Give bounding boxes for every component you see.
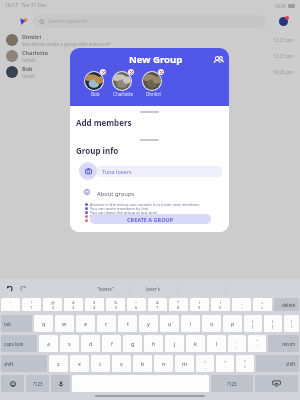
staticText: p xyxy=(231,320,235,327)
staticText: x xyxy=(78,360,81,367)
button[interactable]: + xyxy=(253,298,272,311)
button[interactable]: : xyxy=(228,335,246,352)
staticText: . xyxy=(225,364,227,369)
button[interactable]: l xyxy=(207,335,226,352)
button[interactable]: n xyxy=(154,355,173,372)
button[interactable]: Remove Bob xyxy=(100,69,106,75)
button[interactable]: shift xyxy=(256,355,299,372)
button[interactable]: tab xyxy=(1,315,32,332)
button[interactable]: Bob xyxy=(0,64,300,80)
button[interactable]: Remove Charlotte xyxy=(128,69,134,75)
staticText: 4 xyxy=(93,305,96,310)
button[interactable]: "lovers" xyxy=(81,279,129,298)
button[interactable]: o xyxy=(202,315,221,332)
staticText: e xyxy=(84,320,88,327)
staticText: m xyxy=(182,360,188,367)
staticText: # xyxy=(72,300,75,305)
staticText: a xyxy=(47,340,51,347)
button[interactable]: CREATE A GROUP xyxy=(90,214,211,224)
button[interactable]: _ xyxy=(232,298,251,311)
button[interactable]: $ xyxy=(85,298,104,311)
button[interactable]: ! xyxy=(22,298,41,311)
button[interactable]: w xyxy=(55,315,74,332)
button[interactable]: > xyxy=(216,355,234,372)
button[interactable]: t xyxy=(118,315,137,332)
button[interactable]: Search keywords xyxy=(33,15,266,28)
button[interactable]: ) xyxy=(211,298,230,311)
staticText: j xyxy=(174,340,176,347)
button[interactable]: k xyxy=(186,335,205,352)
button[interactable]: caps lock xyxy=(1,335,37,352)
button[interactable]: Remove Dimitri xyxy=(158,69,164,75)
button[interactable]: Members xyxy=(211,53,225,67)
button[interactable]: " xyxy=(248,335,266,352)
staticText: 2 xyxy=(52,305,55,310)
button[interactable]: @ xyxy=(43,298,62,311)
button[interactable]: Key xyxy=(51,375,70,392)
staticText: h xyxy=(152,340,156,347)
button[interactable]: e xyxy=(76,315,95,332)
button[interactable]: Menu xyxy=(17,15,30,28)
button[interactable]: y xyxy=(139,315,158,332)
button[interactable]: Tuna lovers xyxy=(97,166,222,177)
button[interactable]: Key xyxy=(255,375,298,392)
button[interactable]: Charlotte xyxy=(0,48,300,64)
staticText: ] xyxy=(272,324,274,329)
button[interactable]: Redo xyxy=(17,279,29,298)
button[interactable]: < xyxy=(196,355,214,372)
staticText: 0 xyxy=(219,305,222,310)
button[interactable]: { xyxy=(244,315,262,332)
button[interactable]: p xyxy=(223,315,242,332)
button[interactable]: ?123 xyxy=(211,375,253,392)
staticText: Links expire after 7 days xyxy=(90,218,136,222)
button[interactable]: # xyxy=(64,298,83,311)
button[interactable]: Undo xyxy=(4,279,16,298)
button[interactable]: delete xyxy=(274,298,299,311)
staticText: Anyone in the group can rename it or inv… xyxy=(90,202,200,206)
button[interactable]: } xyxy=(264,315,282,332)
staticText: "lovers" xyxy=(97,286,114,292)
button[interactable]: j xyxy=(165,335,184,352)
button[interactable]: i xyxy=(181,315,200,332)
button[interactable]: ^ xyxy=(127,298,146,311)
button[interactable]: ( xyxy=(190,298,209,311)
button[interactable]: f xyxy=(102,335,121,352)
staticText: w xyxy=(62,320,67,327)
button[interactable]: g xyxy=(123,335,142,352)
button[interactable]: s xyxy=(60,335,79,352)
button[interactable]: return xyxy=(268,335,299,352)
button[interactable]: v xyxy=(112,355,131,372)
button[interactable]: | xyxy=(284,315,299,332)
button[interactable]: m xyxy=(175,355,194,372)
staticText: ; xyxy=(236,344,238,349)
button[interactable]: Key xyxy=(1,375,24,392)
button[interactable]: u xyxy=(160,315,179,332)
button[interactable]: Dimitri xyxy=(0,32,300,48)
button[interactable]: lover's xyxy=(129,279,177,298)
staticText: Group info xyxy=(76,145,119,156)
button[interactable]: q xyxy=(34,315,53,332)
button[interactable]: Group photo xyxy=(79,162,97,180)
button[interactable]: a xyxy=(39,335,58,352)
button[interactable]: shift xyxy=(1,355,47,372)
staticText: \ xyxy=(291,324,293,329)
button[interactable]: r xyxy=(97,315,116,332)
button[interactable]: * xyxy=(169,298,188,311)
button[interactable]: x xyxy=(70,355,89,372)
button[interactable]: z xyxy=(49,355,68,372)
button[interactable]: ?123 xyxy=(26,375,49,392)
button[interactable]: b xyxy=(133,355,152,372)
staticText: t xyxy=(127,320,129,327)
button[interactable]: ? xyxy=(236,355,254,372)
staticText: r xyxy=(105,320,108,327)
button[interactable]: h xyxy=(144,335,163,352)
button[interactable]: ~ xyxy=(1,298,20,311)
button[interactable]: d xyxy=(81,335,100,352)
staticText: ) xyxy=(220,300,222,305)
button[interactable]: % xyxy=(106,298,125,311)
button[interactable]: c xyxy=(91,355,110,372)
button[interactable]: Profile xyxy=(277,15,290,28)
button[interactable]: & xyxy=(148,298,167,311)
